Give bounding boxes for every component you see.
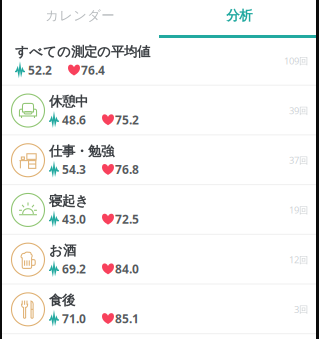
staticText: 寝起き [49,193,89,209]
button[interactable]: 休憩中 [0,86,319,135]
staticText: 69.2 [62,261,86,277]
staticText: 75.2 [115,112,139,128]
staticText: 43.0 [62,211,86,227]
staticText: 休憩中 [49,93,88,110]
staticText: 54.3 [62,161,86,177]
staticText: 37回 [289,154,308,166]
staticText: 仕事・勉強 [49,143,114,159]
button[interactable]: お酒 [0,235,319,284]
staticText: カレンダー [45,7,114,24]
button[interactable]: 食後 [0,284,319,334]
staticText: 76.4 [81,62,105,78]
staticText: 39回 [289,104,308,117]
staticText: 109回 [284,55,308,67]
staticText: 72.5 [115,211,139,227]
staticText: 12回 [289,253,308,266]
staticText: 76.8 [115,161,139,177]
button[interactable]: すべての測定の平均値 [0,36,319,86]
staticText: すべての測定の平均値 [15,44,150,60]
staticText: 分析 [226,7,252,24]
staticText: 84.0 [115,261,139,277]
staticText: 48.6 [62,112,86,128]
staticText: 71.0 [62,311,86,326]
staticText: お酒 [49,242,76,259]
button[interactable]: カレンダー [0,0,159,36]
staticText: 52.2 [28,62,52,78]
button[interactable]: 分析 [159,0,319,36]
staticText: 食後 [49,292,75,309]
staticText: 85.1 [115,311,139,326]
staticText: 3回 [294,303,308,316]
staticText: 19回 [289,204,308,216]
button[interactable]: 寝起き [0,185,319,235]
button[interactable]: 仕事・勉強 [0,135,319,185]
